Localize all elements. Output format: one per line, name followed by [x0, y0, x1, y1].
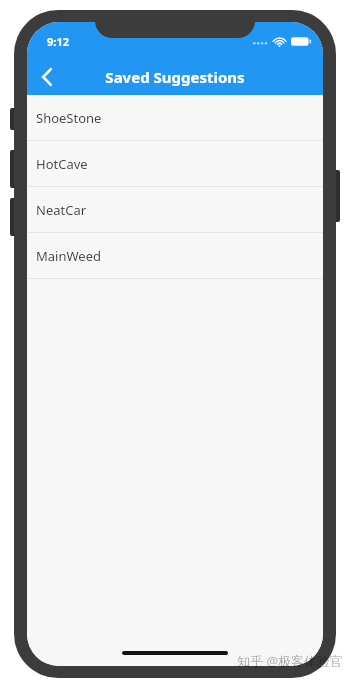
- button[interactable]: MainWeed: [27, 233, 323, 278]
- button[interactable]: ShoeStone: [27, 95, 323, 140]
- staticText: Saved Suggestions: [105, 67, 245, 87]
- staticText: MainWeed: [36, 247, 101, 265]
- staticText: 知乎 @极客体验官: [237, 652, 344, 670]
- button[interactable]: HotCave: [27, 141, 323, 186]
- staticText: ShoeStone: [36, 109, 102, 127]
- button[interactable]: NeatCar: [27, 187, 323, 232]
- staticText: NeatCar: [36, 201, 87, 219]
- staticText: 9:12: [47, 34, 69, 49]
- button[interactable]: Back: [27, 58, 67, 95]
- staticText: HotCave: [36, 155, 88, 173]
